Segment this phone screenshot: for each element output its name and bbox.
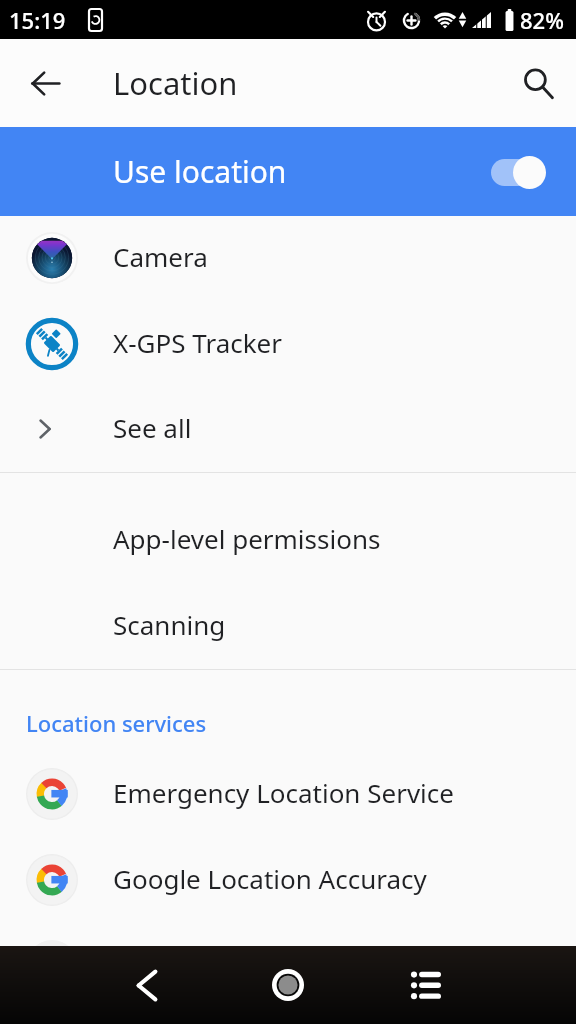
staticText: 82% [520,5,564,35]
button[interactable]: Scanning [0,583,576,669]
staticText: Google Location Accuracy [113,861,427,896]
button[interactable]: App-level permissions [0,497,576,583]
button[interactable]: Camera [0,215,576,301]
button[interactable]: Use location [0,127,576,216]
button[interactable]: Google Location Accuracy [0,837,576,923]
staticText: X-GPS Tracker [113,325,283,360]
staticText: Camera [113,239,208,274]
button[interactable]: Back [113,951,181,1019]
button[interactable]: Emergency Location Service [0,751,576,837]
staticText: Emergency Location Service [113,775,454,810]
staticText: Location [113,62,238,104]
button[interactable] [0,923,576,1009]
button[interactable]: Recent apps [392,951,460,1019]
button[interactable]: Home [254,951,322,1019]
button[interactable]: Search [510,55,566,111]
staticText: Use location [113,151,287,192]
staticText: Scanning [113,607,226,642]
staticText: App-level permissions [113,521,381,556]
staticText: 15:19 [9,5,66,35]
button[interactable]: X-GPS Tracker [0,301,576,387]
staticText: See all [113,410,192,445]
staticText: Location services [26,708,207,738]
button[interactable]: See all [0,386,576,472]
button[interactable]: Navigate up [17,55,73,111]
